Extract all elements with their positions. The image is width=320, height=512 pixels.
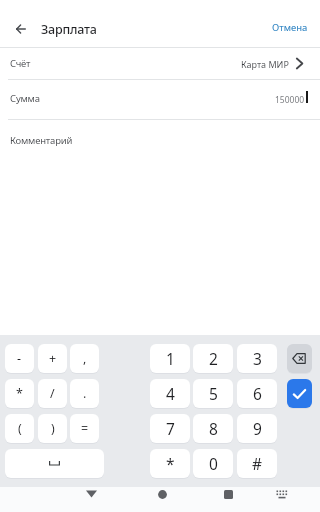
button[interactable]: Счёт — [0, 48, 320, 79]
button[interactable]: 7 — [150, 414, 190, 443]
staticText: , — [83, 350, 87, 367]
staticText: 150000 — [275, 94, 305, 106]
button[interactable]: Отмена — [266, 18, 302, 31]
button[interactable]: + — [38, 344, 67, 373]
staticText: 3 — [253, 348, 262, 369]
staticText: / — [50, 385, 55, 402]
button[interactable]: 8 — [193, 414, 233, 443]
staticText: 8 — [209, 418, 218, 439]
button[interactable] — [287, 344, 312, 373]
button[interactable]: = — [70, 414, 99, 443]
staticText: 1 — [166, 348, 175, 369]
button[interactable]: * — [5, 379, 34, 408]
staticText: 2 — [209, 348, 218, 369]
button[interactable] — [152, 484, 172, 504]
button[interactable] — [218, 484, 238, 504]
staticText: + — [49, 350, 57, 367]
staticText: Зарплата — [41, 21, 97, 38]
button[interactable]: 6 — [237, 379, 277, 408]
button[interactable]: # — [237, 449, 277, 478]
staticText: 0 — [209, 453, 218, 474]
button[interactable]: . — [70, 379, 99, 408]
staticText: 5 — [209, 383, 218, 404]
staticText: * — [16, 385, 23, 402]
staticText: 7 — [166, 418, 175, 439]
staticText: 6 — [253, 383, 262, 404]
staticText: * — [166, 453, 175, 474]
button[interactable]: 1 — [150, 344, 190, 373]
button[interactable] — [8, 18, 34, 40]
button[interactable]: 5 — [193, 379, 233, 408]
button[interactable] — [287, 379, 312, 408]
button[interactable]: 0 — [193, 449, 233, 478]
button[interactable]: 3 — [237, 344, 277, 373]
staticText: . — [83, 385, 87, 402]
button[interactable] — [81, 484, 101, 504]
button[interactable]: ( — [5, 414, 34, 443]
button[interactable]: ) — [38, 414, 67, 443]
button[interactable] — [5, 449, 104, 478]
staticText: Счёт — [10, 57, 31, 70]
staticText: ( — [18, 420, 22, 437]
button[interactable]: 4 — [150, 379, 190, 408]
staticText: # — [252, 453, 263, 474]
staticText: = — [81, 420, 89, 437]
staticText: ) — [51, 420, 55, 437]
staticText: Карта МИР — [241, 58, 289, 70]
button[interactable]: / — [38, 379, 67, 408]
staticText: - — [17, 350, 22, 367]
button[interactable]: * — [150, 449, 190, 478]
staticText: Комментарий — [10, 134, 73, 147]
button[interactable]: Сумма — [0, 80, 320, 119]
staticText: 9 — [253, 418, 262, 439]
button[interactable]: - — [5, 344, 34, 373]
button[interactable] — [272, 484, 292, 504]
staticText: Отмена — [272, 21, 308, 34]
staticText: Сумма — [10, 92, 40, 105]
button[interactable]: Комментарий — [0, 120, 320, 159]
button[interactable]: 2 — [193, 344, 233, 373]
button[interactable]: , — [70, 344, 99, 373]
staticText: 4 — [166, 383, 175, 404]
button[interactable]: 9 — [237, 414, 277, 443]
